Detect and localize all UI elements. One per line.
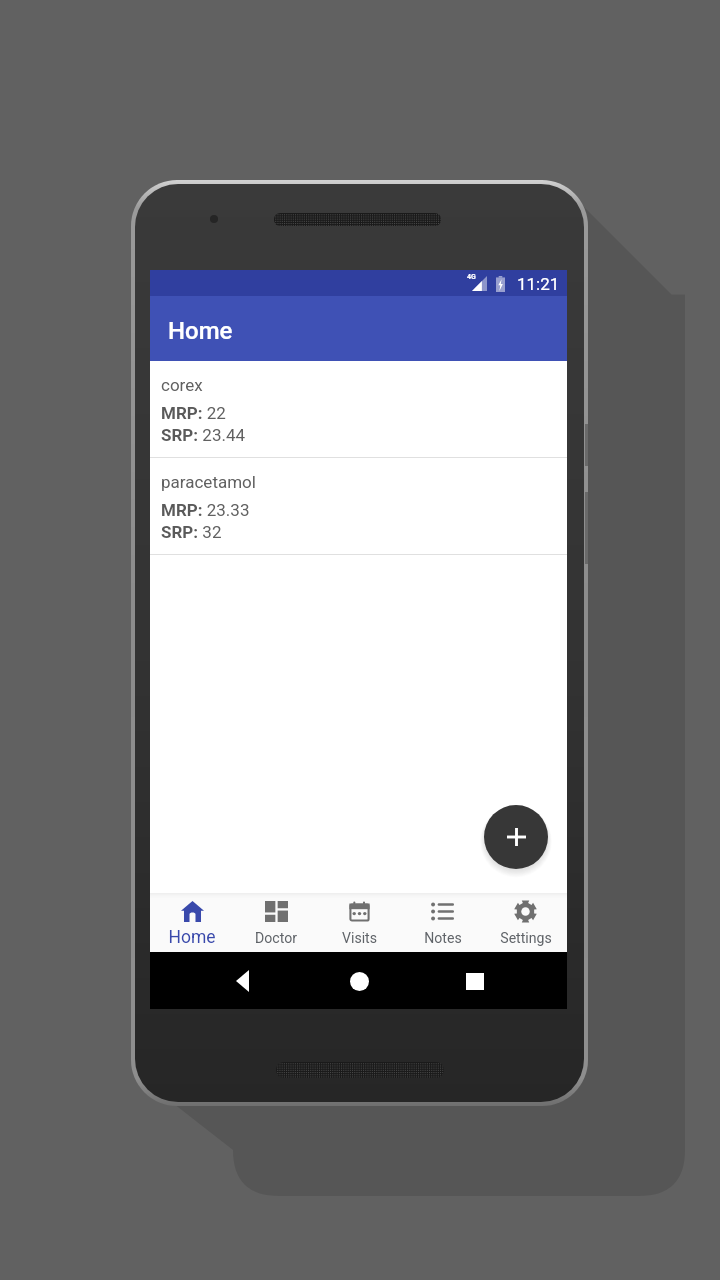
button[interactable]: paracetamol bbox=[150, 458, 567, 555]
staticText: 4G bbox=[467, 273, 476, 281]
button[interactable]: Add bbox=[484, 805, 548, 869]
button[interactable]: corex bbox=[150, 361, 567, 458]
staticText: Settings bbox=[500, 930, 552, 947]
staticText: SRP: 23.44 bbox=[161, 425, 246, 445]
button[interactable]: Recents bbox=[455, 961, 495, 1001]
staticText: Doctor bbox=[255, 930, 297, 947]
button[interactable]: Doctor bbox=[234, 893, 318, 952]
staticText: MRP: 23.33 bbox=[161, 500, 250, 520]
staticText: Visits bbox=[342, 930, 377, 947]
staticText: paracetamol bbox=[161, 472, 256, 492]
button[interactable]: Back bbox=[222, 961, 262, 1001]
staticText: Home bbox=[168, 317, 233, 345]
button[interactable]: Settings bbox=[484, 893, 567, 952]
button[interactable]: Home bbox=[339, 961, 379, 1001]
button[interactable]: Home bbox=[150, 893, 234, 952]
staticText: Notes bbox=[424, 930, 462, 947]
staticText: Home bbox=[168, 927, 216, 948]
button[interactable]: Notes bbox=[401, 893, 484, 952]
staticText: SRP: 32 bbox=[161, 522, 222, 542]
staticText: 11:21 bbox=[517, 274, 560, 294]
staticText: MRP: 22 bbox=[161, 403, 226, 423]
staticText: corex bbox=[161, 375, 203, 395]
button[interactable]: Visits bbox=[318, 893, 401, 952]
